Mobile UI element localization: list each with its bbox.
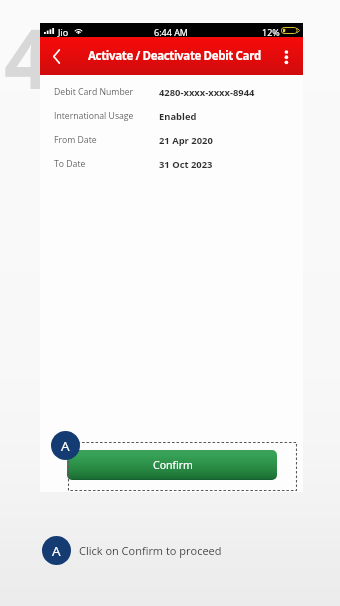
staticText: 4 (4, 0, 52, 113)
staticText: International Usage (54, 110, 159, 122)
staticText: 6:44 AM (154, 26, 188, 38)
staticText: Enabled (159, 110, 197, 123)
staticText: Click on Confirm to proceed (79, 543, 222, 558)
button[interactable]: Back (43, 43, 69, 69)
staticText: 12% (262, 26, 280, 38)
staticText: From Date (54, 134, 159, 146)
staticText: Confirm (153, 458, 193, 472)
staticText: A (52, 542, 61, 560)
staticText: Jio (58, 26, 69, 38)
staticText: 31 Oct 2023 (159, 158, 213, 171)
staticText: 21 Apr 2020 (159, 134, 213, 147)
button[interactable]: Confirm (67, 450, 277, 480)
staticText: Activate / Deactivate Debit Card (88, 48, 261, 64)
staticText: 4280-xxxx-xxxx-8944 (159, 86, 255, 99)
button[interactable]: Step A (51, 431, 80, 460)
staticText: Debit Card Number (54, 86, 159, 98)
staticText: A (61, 437, 70, 455)
button[interactable]: Step A (42, 536, 71, 565)
button[interactable]: More options (276, 45, 298, 67)
staticText: To Date (54, 158, 159, 170)
